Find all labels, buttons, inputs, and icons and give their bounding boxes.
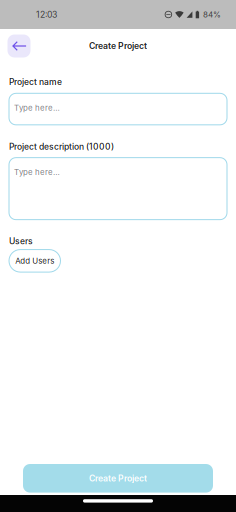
staticText: 84% — [203, 10, 221, 19]
staticText: Create Project — [89, 40, 147, 51]
staticText: Project name — [9, 77, 62, 87]
staticText: 12:03 — [36, 9, 57, 20]
button[interactable]: Type here… — [9, 158, 227, 220]
button[interactable]: Back — [7, 34, 30, 57]
button[interactable]: Create Project — [23, 464, 213, 493]
staticText: Create Project — [89, 473, 147, 484]
button[interactable]: Add Users — [9, 250, 60, 272]
staticText: Type here… — [14, 167, 60, 177]
button[interactable]: Type here… — [9, 93, 227, 125]
staticText: Users — [9, 236, 33, 246]
staticText: Type here… — [14, 103, 60, 113]
staticText: Project description (1000) — [9, 141, 114, 152]
staticText: Add Users — [15, 256, 54, 266]
